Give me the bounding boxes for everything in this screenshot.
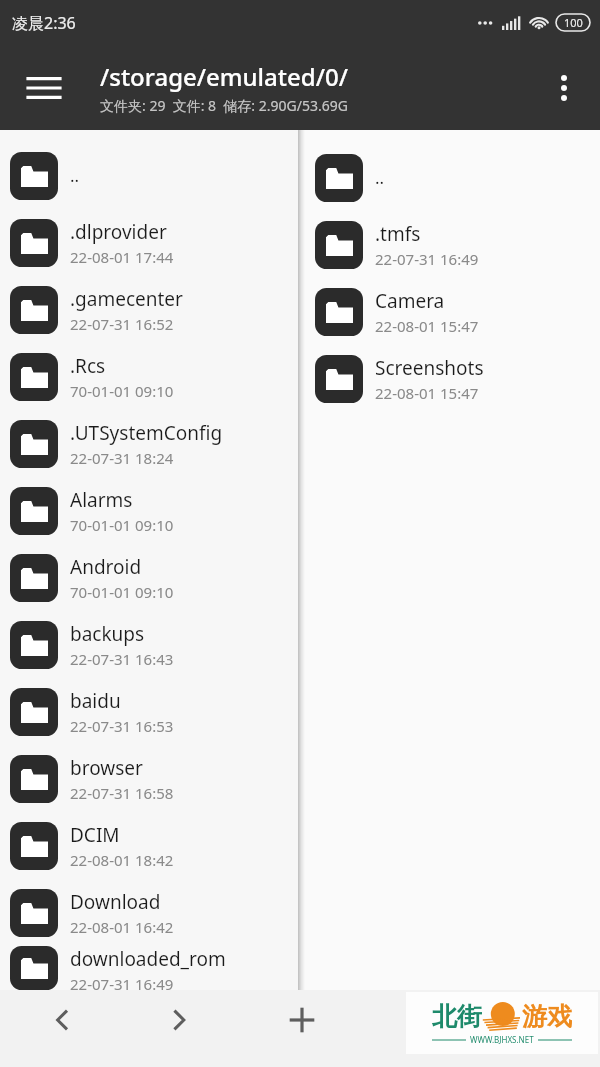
button[interactable]: Screenshots: [305, 345, 600, 412]
button[interactable]: More options: [540, 64, 588, 112]
staticText: Android: [70, 554, 142, 580]
button[interactable]: .Rcs: [0, 343, 298, 410]
button[interactable]: ..: [0, 142, 298, 209]
staticText: downloaded_rom: [70, 946, 226, 972]
staticText: 文件夹: 29 文件: 8 储存: 2.90G/53.69G: [100, 96, 348, 115]
staticText: 22-07-31 16:58: [70, 783, 174, 803]
staticText: 游戏: [522, 1001, 572, 1032]
button[interactable]: Camera: [305, 278, 600, 345]
staticText: WWW.BJHXS.NET: [470, 1034, 534, 1045]
staticText: 100: [564, 15, 583, 30]
staticText: 22-08-01 18:42: [70, 850, 174, 870]
button[interactable]: Menu: [18, 62, 70, 114]
staticText: 22-07-31 16:52: [70, 314, 174, 334]
staticText: 70-01-01 09:10: [70, 515, 174, 535]
button[interactable]: Forward: [157, 998, 201, 1042]
staticText: Download: [70, 889, 161, 915]
button[interactable]: Download: [0, 879, 298, 946]
button[interactable]: ..: [305, 144, 600, 211]
button[interactable]: .gamecenter: [0, 276, 298, 343]
staticText: browser: [70, 755, 143, 781]
staticText: 70-01-01 09:10: [70, 381, 174, 401]
button[interactable]: .tmfs: [305, 211, 600, 278]
staticText: baidu: [70, 688, 121, 714]
staticText: .Rcs: [70, 353, 106, 379]
button[interactable]: Back: [40, 998, 84, 1042]
staticText: Camera: [375, 288, 445, 314]
button[interactable]: Add: [278, 996, 326, 1044]
staticText: /storage/emulated/0/: [100, 60, 348, 93]
button[interactable]: DCIM: [0, 812, 298, 879]
button[interactable]: .UTSystemConfig: [0, 410, 298, 477]
staticText: 22-08-01 15:47: [375, 383, 479, 403]
staticText: 凌晨2:36: [12, 12, 76, 34]
staticText: 北街: [432, 1001, 482, 1032]
button[interactable]: backups: [0, 611, 298, 678]
button[interactable]: Alarms: [0, 477, 298, 544]
staticText: Screenshots: [375, 355, 484, 381]
staticText: 70-01-01 09:10: [70, 582, 174, 602]
staticText: 22-07-31 16:49: [70, 974, 174, 990]
staticText: 22-07-31 16:53: [70, 716, 174, 736]
button[interactable]: baidu: [0, 678, 298, 745]
staticText: .dlprovider: [70, 219, 167, 245]
staticText: .tmfs: [375, 221, 421, 247]
button[interactable]: Android: [0, 544, 298, 611]
staticText: .UTSystemConfig: [70, 420, 223, 446]
staticText: 22-07-31 16:43: [70, 649, 174, 669]
staticText: 22-08-01 17:44: [70, 247, 174, 267]
staticText: backups: [70, 621, 145, 647]
staticText: 22-07-31 16:49: [375, 249, 479, 269]
button[interactable]: downloaded_rom: [0, 946, 298, 990]
staticText: 22-08-01 16:42: [70, 917, 174, 937]
staticText: ..: [70, 164, 80, 187]
staticText: DCIM: [70, 822, 120, 848]
button[interactable]: .dlprovider: [0, 209, 298, 276]
staticText: .gamecenter: [70, 286, 183, 312]
staticText: 22-08-01 15:47: [375, 316, 479, 336]
button[interactable]: browser: [0, 745, 298, 812]
staticText: Alarms: [70, 487, 133, 513]
staticText: 22-07-31 18:24: [70, 448, 174, 468]
staticText: ..: [375, 166, 385, 189]
